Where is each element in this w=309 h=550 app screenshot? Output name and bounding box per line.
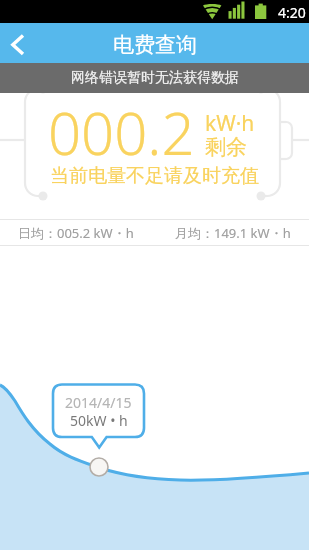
staticText: 日均：005.2 kW・h bbox=[18, 224, 134, 242]
staticText: 000.2 bbox=[48, 93, 195, 172]
staticText: 当前电量不足请及时充值 bbox=[0, 164, 309, 188]
staticText: 网络错误暂时无法获得数据 bbox=[71, 69, 239, 87]
staticText: kW·h bbox=[205, 109, 255, 138]
button[interactable]: 2014/4/15 bbox=[53, 384, 144, 437]
staticText: 4:20 bbox=[278, 3, 306, 22]
staticText: 月均：149.1 kW・h bbox=[175, 224, 291, 242]
staticText: 剩余 bbox=[205, 134, 247, 160]
button[interactable]: Back bbox=[0, 23, 40, 63]
staticText: 电费查询 bbox=[113, 32, 197, 58]
staticText: 2014/4/15 bbox=[65, 393, 132, 412]
staticText: 50kW • h bbox=[70, 411, 128, 430]
